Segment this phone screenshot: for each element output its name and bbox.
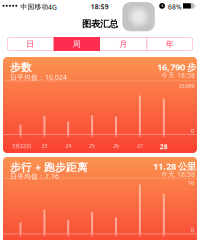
button[interactable]: 步数 xyxy=(3,57,197,153)
staticText: 年 xyxy=(166,39,174,49)
staticText: 25,000 xyxy=(178,82,194,89)
button[interactable]: 步行 + 跑步距离 xyxy=(3,157,197,240)
staticText: 中国移动 xyxy=(20,3,48,11)
staticText: 0 xyxy=(191,127,194,134)
staticText: 日平均值：7.16 xyxy=(10,172,59,181)
staticText: 步数 xyxy=(10,61,32,74)
staticText: 今天 18:58 xyxy=(161,71,195,80)
button[interactable]: AssistiveTouch xyxy=(122,2,155,31)
button[interactable]: 年 xyxy=(146,37,193,51)
staticText: 3月22日 xyxy=(12,142,31,149)
staticText: 26 xyxy=(113,142,119,149)
button[interactable]: 日 xyxy=(7,37,53,51)
staticText: 16,790 步 xyxy=(157,61,196,73)
staticText: 18:59 xyxy=(91,2,109,11)
staticText: 27 xyxy=(137,142,143,149)
button[interactable]: 月 xyxy=(100,37,146,51)
staticText: 23 xyxy=(41,142,47,149)
staticText: 图表汇总 xyxy=(82,18,118,30)
staticText: 日平均值：10,024 xyxy=(10,73,67,82)
staticText: 周 xyxy=(73,39,81,49)
staticText: 68% xyxy=(168,2,182,11)
staticText: 16 xyxy=(188,179,194,186)
staticText: 24 xyxy=(65,142,71,149)
staticText: 4G xyxy=(48,3,57,12)
staticText: 今天 18:58 xyxy=(161,170,195,179)
staticText: 日 xyxy=(26,39,34,49)
staticText: 25 xyxy=(89,142,95,149)
staticText: 月 xyxy=(119,39,127,49)
staticText: 28 xyxy=(160,142,168,151)
button[interactable]: 周 xyxy=(53,37,100,51)
staticText: 11.28 公里 xyxy=(153,160,196,172)
staticText: 步行 + 跑步距离 xyxy=(10,160,88,174)
staticText: 0 xyxy=(191,227,194,234)
